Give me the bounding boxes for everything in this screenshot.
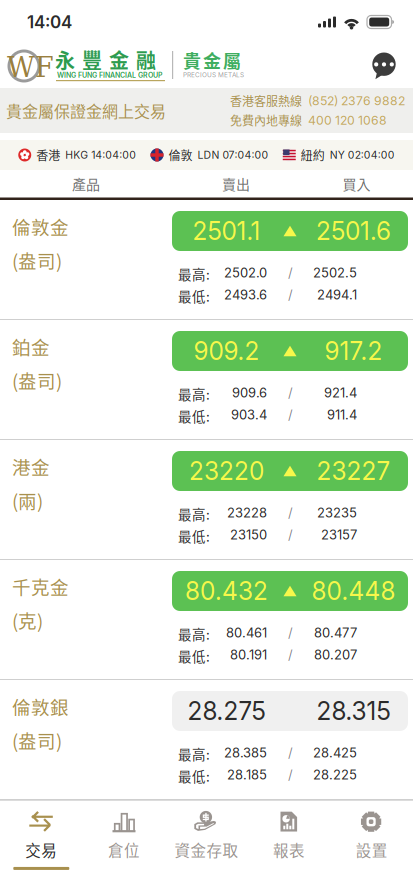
staticText: 倫敦金 xyxy=(12,213,69,240)
staticText: 28.315 xyxy=(316,696,390,726)
staticText: 產品 xyxy=(72,174,100,194)
staticText: 金 xyxy=(203,47,221,73)
staticText: 免費內地專線 xyxy=(230,111,302,129)
button[interactable]: 千克金 xyxy=(0,560,413,680)
staticText: 豐 xyxy=(82,45,102,74)
button[interactable]: 倫敦銀 xyxy=(0,680,413,800)
staticText: (盎司) xyxy=(12,247,62,274)
staticText: 2502.0 xyxy=(224,265,267,281)
staticText: 最高: xyxy=(178,504,210,523)
staticText: 融 xyxy=(136,45,156,74)
staticText: 909.6 xyxy=(232,385,267,401)
staticText: 14:04 xyxy=(27,12,72,32)
staticText: 917.2 xyxy=(324,336,382,366)
staticText: 2501.6 xyxy=(316,216,391,246)
staticText: 80.432 xyxy=(185,576,268,606)
staticText: 賣出 xyxy=(222,174,250,194)
staticText: / xyxy=(288,647,293,663)
staticText: 永 xyxy=(55,45,75,74)
staticText: 最低: xyxy=(178,286,210,305)
staticText: 香港 xyxy=(36,146,60,164)
staticText: 最低: xyxy=(178,766,210,785)
staticText: 金 xyxy=(109,45,129,74)
staticText: 23150 xyxy=(230,527,267,543)
staticText: 2493.6 xyxy=(224,287,267,303)
staticText: 28.385 xyxy=(224,745,267,761)
staticText: 最低: xyxy=(178,406,210,425)
staticText: / xyxy=(288,407,293,423)
staticText: PRECIOUS METALS xyxy=(183,71,244,79)
staticText: (盎司) xyxy=(12,727,62,754)
staticText: 紐約 xyxy=(301,146,325,164)
staticText: / xyxy=(288,287,293,303)
staticText: 28.185 xyxy=(227,767,267,783)
staticText: (克) xyxy=(12,607,43,634)
staticText: 28.275 xyxy=(187,696,265,726)
button[interactable]: 倉位 xyxy=(83,800,165,896)
staticText: 交易 xyxy=(25,838,57,861)
staticText: 23228 xyxy=(227,505,267,521)
staticText: 貴金屬保證金網上交易 xyxy=(6,99,166,122)
button[interactable]: 設置 xyxy=(330,800,413,896)
staticText: HKG 14:04:00 xyxy=(65,149,136,161)
staticText: 23227 xyxy=(316,456,390,486)
staticText: 香港客服熱線 xyxy=(230,92,302,109)
staticText: 設置 xyxy=(356,838,388,861)
staticText: (852) 2376 9882 xyxy=(308,93,405,108)
button[interactable]: Chat xyxy=(369,51,399,81)
staticText: / xyxy=(288,265,293,281)
staticText: 資金存取 xyxy=(174,838,238,861)
staticText: 23157 xyxy=(321,527,357,543)
staticText: 買入 xyxy=(342,174,370,194)
staticText: 港金 xyxy=(12,453,50,480)
staticText: (盎司) xyxy=(12,367,62,394)
button[interactable]: 交易 xyxy=(0,800,83,896)
staticText: 921.4 xyxy=(324,385,357,401)
staticText: 909.2 xyxy=(193,336,259,366)
staticText: 最高: xyxy=(178,384,210,403)
staticText: 最低: xyxy=(178,646,210,665)
staticText: 2494.1 xyxy=(317,287,357,303)
staticText: 最高: xyxy=(178,744,210,763)
staticText: 400 120 1068 xyxy=(308,113,387,128)
staticText: / xyxy=(288,385,293,401)
staticText: WF xyxy=(7,52,54,83)
button[interactable]: 港金 xyxy=(0,440,413,560)
staticText: 千克金 xyxy=(12,573,69,600)
staticText: / xyxy=(288,527,293,543)
staticText: 28.225 xyxy=(313,767,357,783)
staticText: 23220 xyxy=(189,456,264,486)
staticText: LDN 07:04:00 xyxy=(197,149,268,161)
staticText: 倫敦銀 xyxy=(12,693,69,720)
staticText: NY 02:04:00 xyxy=(330,149,395,161)
staticText: 報表 xyxy=(273,838,305,861)
staticText: 最低: xyxy=(178,526,210,545)
staticText: 最高: xyxy=(178,264,210,283)
staticText: 貴 xyxy=(183,47,201,73)
staticText: / xyxy=(288,767,293,783)
staticText: 80.191 xyxy=(230,647,267,663)
staticText: (兩) xyxy=(12,487,43,514)
staticText: / xyxy=(288,625,293,641)
button[interactable]: 倫敦金 xyxy=(0,200,413,320)
staticText: 2501.1 xyxy=(192,216,260,246)
staticText: 倉位 xyxy=(108,838,140,861)
staticText: 28.425 xyxy=(313,745,357,761)
staticText: 2502.5 xyxy=(313,265,357,281)
staticText: 倫敦 xyxy=(168,146,192,164)
staticText: / xyxy=(288,745,293,761)
staticText: 鉑金 xyxy=(12,333,50,360)
staticText: 80.477 xyxy=(314,625,357,641)
staticText: 80.207 xyxy=(314,647,357,663)
button[interactable]: 鉑金 xyxy=(0,320,413,440)
staticText: / xyxy=(288,505,293,521)
staticText: WING FUNG FINANCIAL GROUP xyxy=(57,71,163,79)
staticText: 最高: xyxy=(178,624,210,643)
button[interactable]: 資金存取 xyxy=(165,800,248,896)
staticText: 80.461 xyxy=(226,625,267,641)
staticText: 903.4 xyxy=(231,407,267,423)
button[interactable]: 報表 xyxy=(248,800,330,896)
staticText: 屬 xyxy=(223,47,241,73)
staticText: 80.448 xyxy=(311,576,395,606)
staticText: 23235 xyxy=(317,505,357,521)
